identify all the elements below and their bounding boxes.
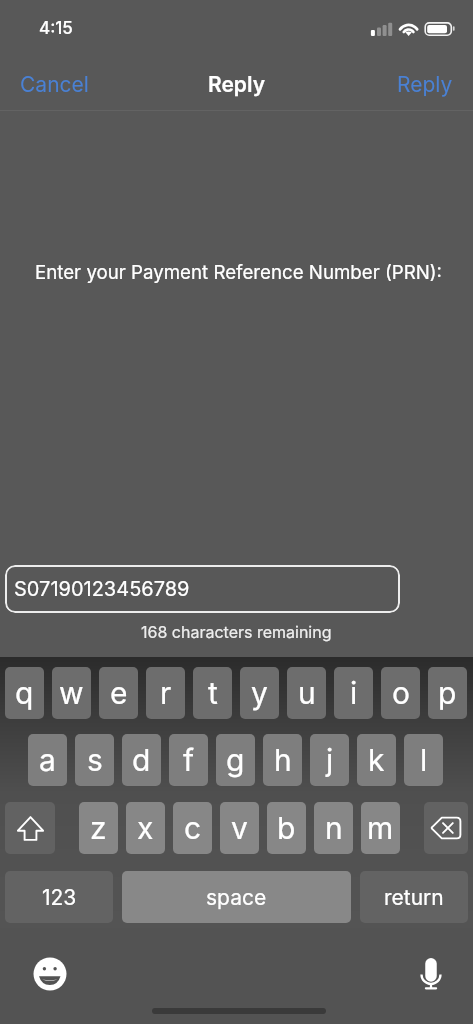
staticText: q <box>15 675 34 711</box>
button[interactable]: u <box>287 667 326 719</box>
staticText: l <box>420 742 428 778</box>
staticText: d <box>132 742 151 778</box>
button[interactable]: space <box>122 871 351 923</box>
staticText: j <box>326 742 334 778</box>
staticText: u <box>298 675 316 711</box>
button[interactable]: Reply <box>377 62 473 107</box>
staticText: space <box>206 885 267 910</box>
staticText: x <box>137 810 154 846</box>
button[interactable]: z <box>79 802 118 854</box>
button[interactable]: x <box>126 802 165 854</box>
button[interactable]: o <box>381 667 420 719</box>
staticText: Cancel <box>20 72 89 97</box>
staticText: 4:15 <box>39 18 73 39</box>
staticText: g <box>226 742 245 778</box>
button[interactable]: w <box>52 667 91 719</box>
button[interactable]: n <box>314 802 353 854</box>
staticText: Enter your Payment Reference Number (PRN… <box>35 261 442 284</box>
button[interactable]: r <box>146 667 185 719</box>
button[interactable]: g <box>216 734 255 786</box>
button[interactable]: v <box>220 802 259 854</box>
staticText: a <box>39 742 56 778</box>
staticText: 123 <box>42 885 77 910</box>
button[interactable]: i <box>334 667 373 719</box>
staticText: h <box>274 742 292 778</box>
button[interactable]: Cancel <box>0 62 109 107</box>
button[interactable]: Backspace <box>424 802 468 854</box>
button[interactable]: y <box>240 667 279 719</box>
button[interactable]: m <box>361 802 400 854</box>
staticText: w <box>59 675 84 711</box>
button[interactable]: p <box>428 667 467 719</box>
staticText: s <box>87 742 103 778</box>
staticText: e <box>110 675 128 711</box>
button[interactable]: s <box>75 734 114 786</box>
staticText: i <box>350 675 358 711</box>
button[interactable]: f <box>169 734 208 786</box>
staticText: c <box>184 810 202 846</box>
staticText: b <box>277 810 296 846</box>
button[interactable]: b <box>267 802 306 854</box>
button[interactable]: 123 <box>5 871 113 923</box>
button[interactable]: d <box>122 734 161 786</box>
staticText: Reply <box>397 72 453 97</box>
button[interactable]: S07190123456789 <box>5 565 400 613</box>
staticText: z <box>90 810 107 846</box>
staticText: v <box>231 810 248 846</box>
button[interactable]: j <box>310 734 349 786</box>
staticText: o <box>392 675 410 711</box>
staticText: S07190123456789 <box>14 577 190 601</box>
staticText: p <box>438 675 457 711</box>
staticText: r <box>160 675 172 711</box>
button[interactable]: t <box>193 667 232 719</box>
button[interactable]: l <box>404 734 443 786</box>
button[interactable]: Emoji keyboard <box>28 952 72 996</box>
button[interactable]: a <box>28 734 67 786</box>
button[interactable]: return <box>360 871 468 923</box>
button[interactable]: c <box>173 802 212 854</box>
button[interactable]: e <box>99 667 138 719</box>
button[interactable]: q <box>5 667 44 719</box>
staticText: m <box>367 810 394 846</box>
staticText: n <box>325 810 343 846</box>
staticText: return <box>384 885 444 910</box>
button[interactable]: k <box>357 734 396 786</box>
button[interactable]: Shift <box>5 802 55 854</box>
staticText: f <box>183 742 195 778</box>
staticText: 168 characters remaining <box>141 622 332 641</box>
button[interactable]: Dictation <box>409 952 453 996</box>
button[interactable]: h <box>263 734 302 786</box>
staticText: y <box>251 675 268 711</box>
staticText: k <box>368 742 385 778</box>
staticText: Reply <box>208 72 265 97</box>
staticText: t <box>208 675 218 711</box>
